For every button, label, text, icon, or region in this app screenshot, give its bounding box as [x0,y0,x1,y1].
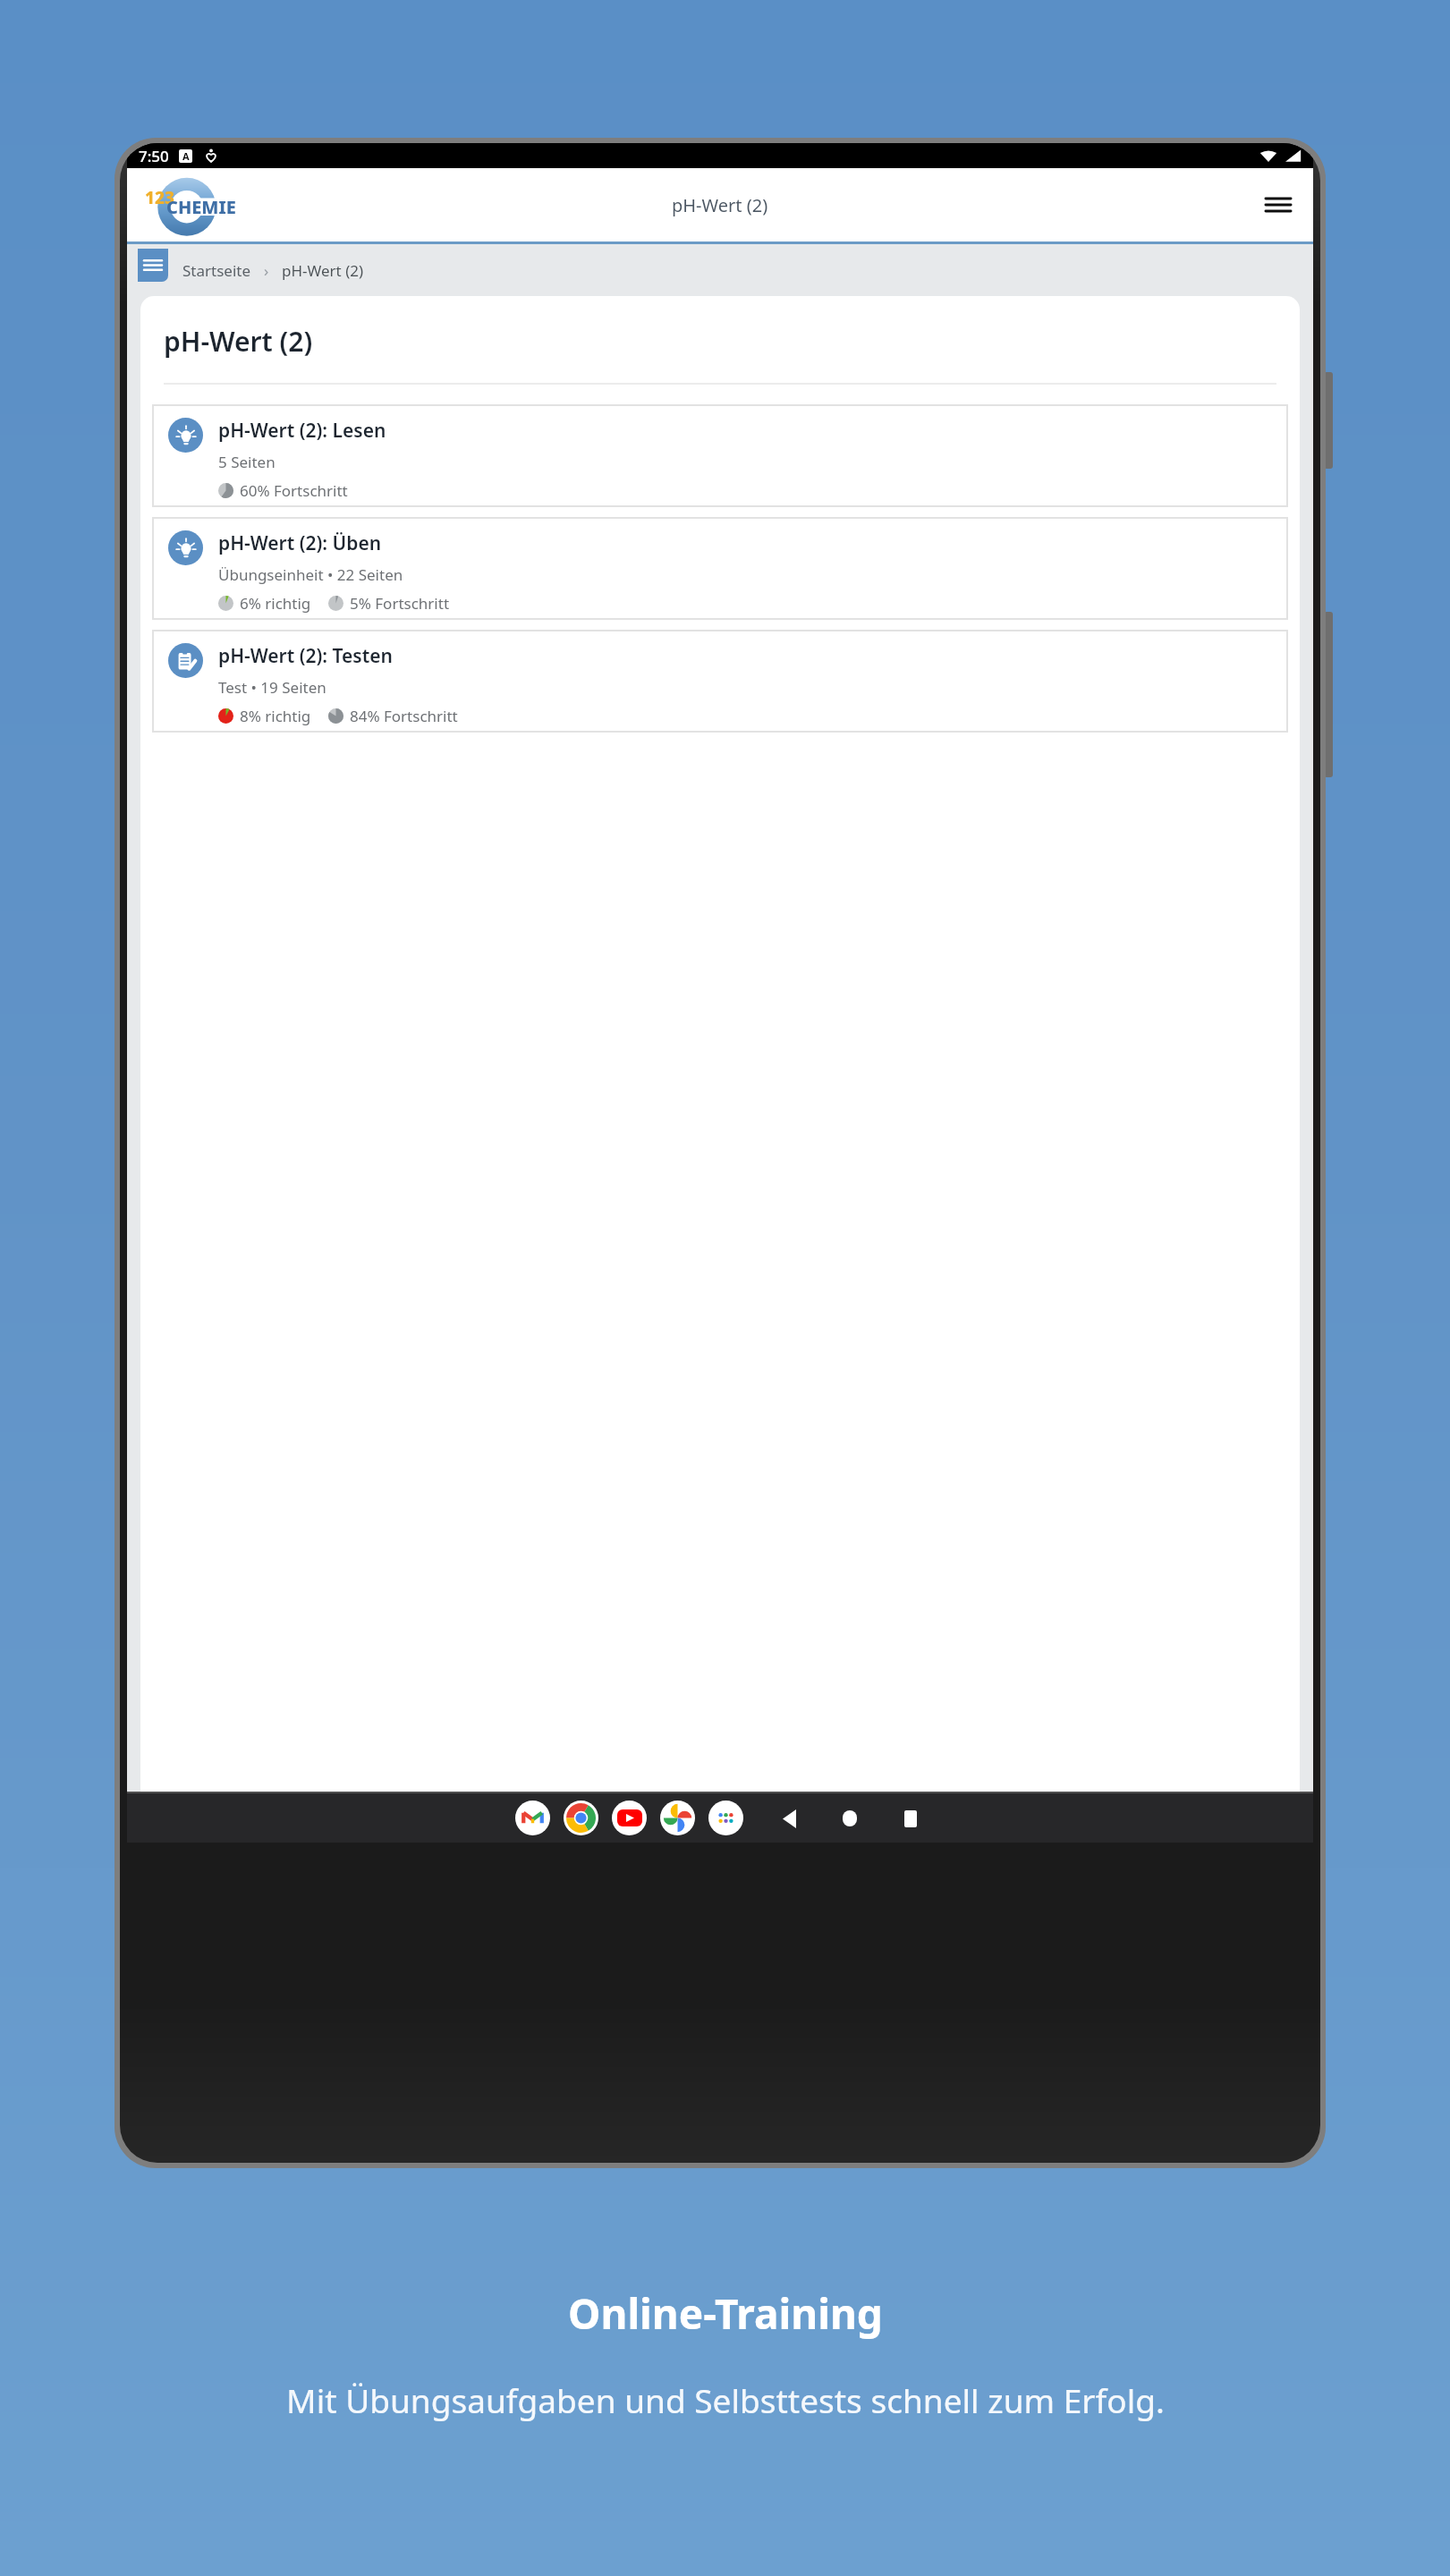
staticText: 5% Fortschritt [350,593,450,614]
staticText: pH-Wert (2): Testen [218,643,393,669]
button[interactable]: Navigation öffnen [138,249,168,282]
button[interactable]: Letzte Apps [895,1803,926,1834]
button[interactable]: pH-Wert (2): Üben [152,517,1288,620]
button[interactable]: Alle Apps [708,1801,743,1835]
button[interactable]: pH-Wert (2): Lesen [152,404,1288,507]
staticText: A [182,149,190,163]
button[interactable]: 123Chemie Startseite [143,172,252,238]
staticText: 60% Fortschritt [240,480,348,501]
button[interactable]: Chrome [564,1801,598,1835]
button[interactable]: Startseite [182,260,251,281]
button[interactable]: Startbildschirm [835,1803,865,1834]
staticText: CHEMIE [166,195,236,219]
staticText: Übungseinheit • 22 Seiten [218,564,403,585]
button[interactable]: Google Fotos [660,1801,695,1835]
staticText: Mit Übungsaufgaben und Selbsttests schne… [286,2377,1165,2422]
staticText: 8% richtig [240,706,311,726]
button[interactable]: Zurück [774,1803,804,1834]
button[interactable]: Gmail [515,1801,550,1835]
staticText: pH-Wert (2) [282,260,364,281]
staticText: 6% richtig [240,593,311,614]
button[interactable]: pH-Wert (2): Testen [152,630,1288,733]
staticText: 7:50 [139,146,169,166]
staticText: 84% Fortschritt [350,706,458,726]
staticText: pH-Wert (2): Lesen [218,418,386,444]
button[interactable]: Menü [1256,182,1301,227]
staticText: › [264,260,269,281]
staticText: pH-Wert (2): Üben [218,530,382,556]
staticText: 5 Seiten [218,452,276,472]
staticText: pH-Wert (2) [164,323,313,360]
staticText: pH-Wert (2) [672,193,768,217]
staticText: Online-Training [568,2285,883,2342]
staticText: Test • 19 Seiten [218,677,326,698]
staticText: 123 [145,186,174,209]
button[interactable]: YouTube [612,1801,647,1835]
